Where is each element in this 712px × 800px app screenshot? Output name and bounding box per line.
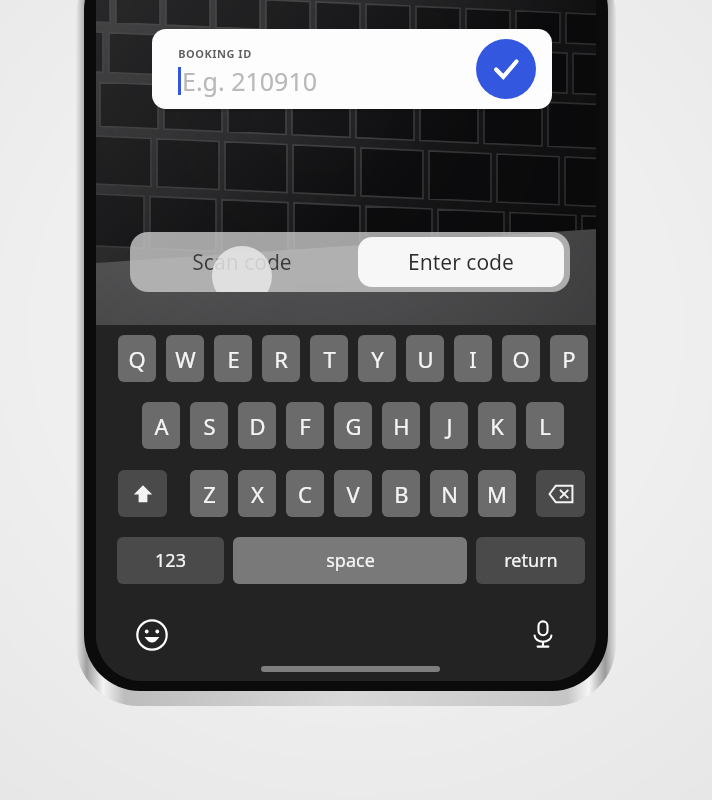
button[interactable]: O [502, 335, 540, 382]
button[interactable]: Emoji keyboard [134, 617, 170, 653]
button[interactable]: F [286, 402, 324, 449]
staticText: J [446, 411, 453, 441]
button[interactable]: D [238, 402, 276, 449]
staticText: Z [203, 479, 216, 509]
staticText: F [299, 411, 311, 441]
button[interactable]: X [238, 470, 276, 517]
button[interactable]: Backspace [536, 470, 585, 517]
staticText: E [227, 344, 240, 374]
button[interactable]: space [233, 537, 467, 584]
button[interactable]: 123 [117, 537, 224, 584]
staticText: X [251, 479, 264, 509]
button[interactable]: G [334, 402, 372, 449]
button[interactable]: W [166, 335, 204, 382]
staticText: Enter code [408, 248, 514, 277]
button[interactable]: A [142, 402, 180, 449]
button[interactable]: S [190, 402, 228, 449]
button[interactable]: H [382, 402, 420, 449]
staticText: Scan code [192, 248, 292, 277]
button[interactable]: J [430, 402, 468, 449]
staticText: V [346, 479, 360, 509]
staticText: 123 [155, 548, 186, 573]
button[interactable]: T [310, 335, 348, 382]
staticText: O [512, 344, 530, 374]
button[interactable]: I [454, 335, 492, 382]
button[interactable]: Z [190, 470, 228, 517]
staticText: I [469, 344, 477, 374]
staticText: G [345, 411, 362, 441]
button[interactable]: N [430, 470, 468, 517]
staticText: C [298, 479, 312, 509]
staticText: S [203, 411, 216, 441]
staticText: E.g. 210910 [182, 64, 317, 98]
staticText: Q [128, 344, 146, 374]
staticText: B [394, 479, 409, 509]
button[interactable]: E [214, 335, 252, 382]
button[interactable]: Enter code [358, 237, 564, 287]
button[interactable]: L [526, 402, 564, 449]
staticText: return [504, 548, 558, 573]
staticText: W [175, 344, 196, 374]
staticText: BOOKING ID [178, 46, 252, 61]
button[interactable]: BOOKING ID [152, 29, 552, 109]
button[interactable]: V [334, 470, 372, 517]
staticText: K [490, 411, 504, 441]
button[interactable]: Confirm booking ID [476, 39, 536, 99]
staticText: M [487, 479, 507, 509]
staticText: R [274, 344, 288, 374]
button[interactable]: B [382, 470, 420, 517]
button[interactable]: Y [358, 335, 396, 382]
button[interactable]: M [478, 470, 516, 517]
button[interactable]: R [262, 335, 300, 382]
button[interactable]: Shift [118, 470, 167, 517]
staticText: N [441, 479, 458, 509]
staticText: D [249, 411, 266, 441]
button[interactable]: C [286, 470, 324, 517]
button[interactable]: Dictation [524, 615, 562, 653]
staticText: Y [371, 344, 384, 374]
staticText: L [539, 411, 551, 441]
staticText: space [326, 548, 375, 573]
button[interactable]: Scan code [134, 236, 350, 288]
staticText: T [323, 344, 336, 374]
staticText: P [562, 344, 576, 374]
button[interactable]: return [476, 537, 585, 584]
staticText: A [154, 411, 169, 441]
button[interactable]: U [406, 335, 444, 382]
button[interactable]: Q [118, 335, 156, 382]
button[interactable]: P [550, 335, 588, 382]
staticText: H [393, 411, 410, 441]
button[interactable]: K [478, 402, 516, 449]
staticText: U [417, 344, 434, 374]
